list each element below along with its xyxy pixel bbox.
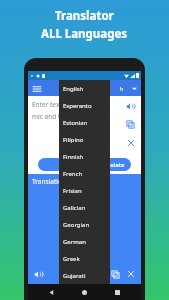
staticText: English bbox=[63, 85, 84, 93]
staticText: Galician bbox=[63, 204, 86, 212]
button[interactable]: German bbox=[59, 233, 110, 250]
button[interactable]: Esperanto bbox=[59, 97, 110, 114]
staticText: French bbox=[63, 170, 83, 178]
button[interactable]: Frisian bbox=[59, 182, 110, 199]
button[interactable]: Dropdown bbox=[130, 84, 138, 92]
staticText: Gujarati bbox=[63, 272, 86, 280]
button[interactable]: Copy bbox=[124, 118, 137, 131]
button[interactable]: Gujarati bbox=[59, 267, 110, 284]
staticText: Translation bbox=[32, 177, 66, 186]
staticText: German bbox=[63, 238, 86, 246]
staticText: Frisian bbox=[63, 187, 82, 195]
staticText: Filipino bbox=[63, 136, 84, 144]
staticText: Estonian bbox=[63, 119, 88, 127]
button[interactable]: Clear translation bbox=[125, 268, 137, 280]
staticText: Translator bbox=[55, 8, 114, 24]
button[interactable]: Galician bbox=[59, 199, 110, 216]
button[interactable]: Copy translation bbox=[109, 268, 121, 280]
button[interactable]: Clear bbox=[124, 136, 137, 149]
button[interactable]: Filipino bbox=[59, 131, 110, 148]
button[interactable]: Speak translation bbox=[32, 268, 44, 280]
button[interactable]: Translate bbox=[91, 158, 131, 171]
button[interactable]: Estonian bbox=[59, 114, 110, 131]
staticText: Finnish bbox=[63, 153, 84, 161]
staticText: h bbox=[120, 85, 124, 92]
button[interactable]: Back bbox=[46, 287, 57, 298]
button[interactable]: Greek bbox=[59, 250, 110, 267]
button[interactable]: English bbox=[59, 80, 110, 97]
staticText: Translate bbox=[98, 161, 125, 169]
button[interactable]: Home bbox=[79, 287, 90, 298]
staticText: Esperanto bbox=[63, 102, 92, 110]
button[interactable]: Menu bbox=[31, 83, 42, 94]
staticText: ALL Languages bbox=[41, 26, 128, 42]
staticText: Georgian bbox=[63, 221, 90, 229]
button[interactable]: Georgian bbox=[59, 216, 110, 233]
button[interactable]: Recents bbox=[112, 287, 123, 298]
button[interactable]: French bbox=[59, 165, 110, 182]
staticText: mic and translate bbox=[32, 112, 85, 121]
button[interactable]: Speak bbox=[124, 100, 137, 113]
staticText: Greek bbox=[63, 255, 80, 263]
button[interactable]: Finnish bbox=[59, 148, 110, 165]
button[interactable]: Microphone bbox=[38, 158, 64, 171]
staticText: Enter text or speak using bbox=[32, 100, 109, 109]
